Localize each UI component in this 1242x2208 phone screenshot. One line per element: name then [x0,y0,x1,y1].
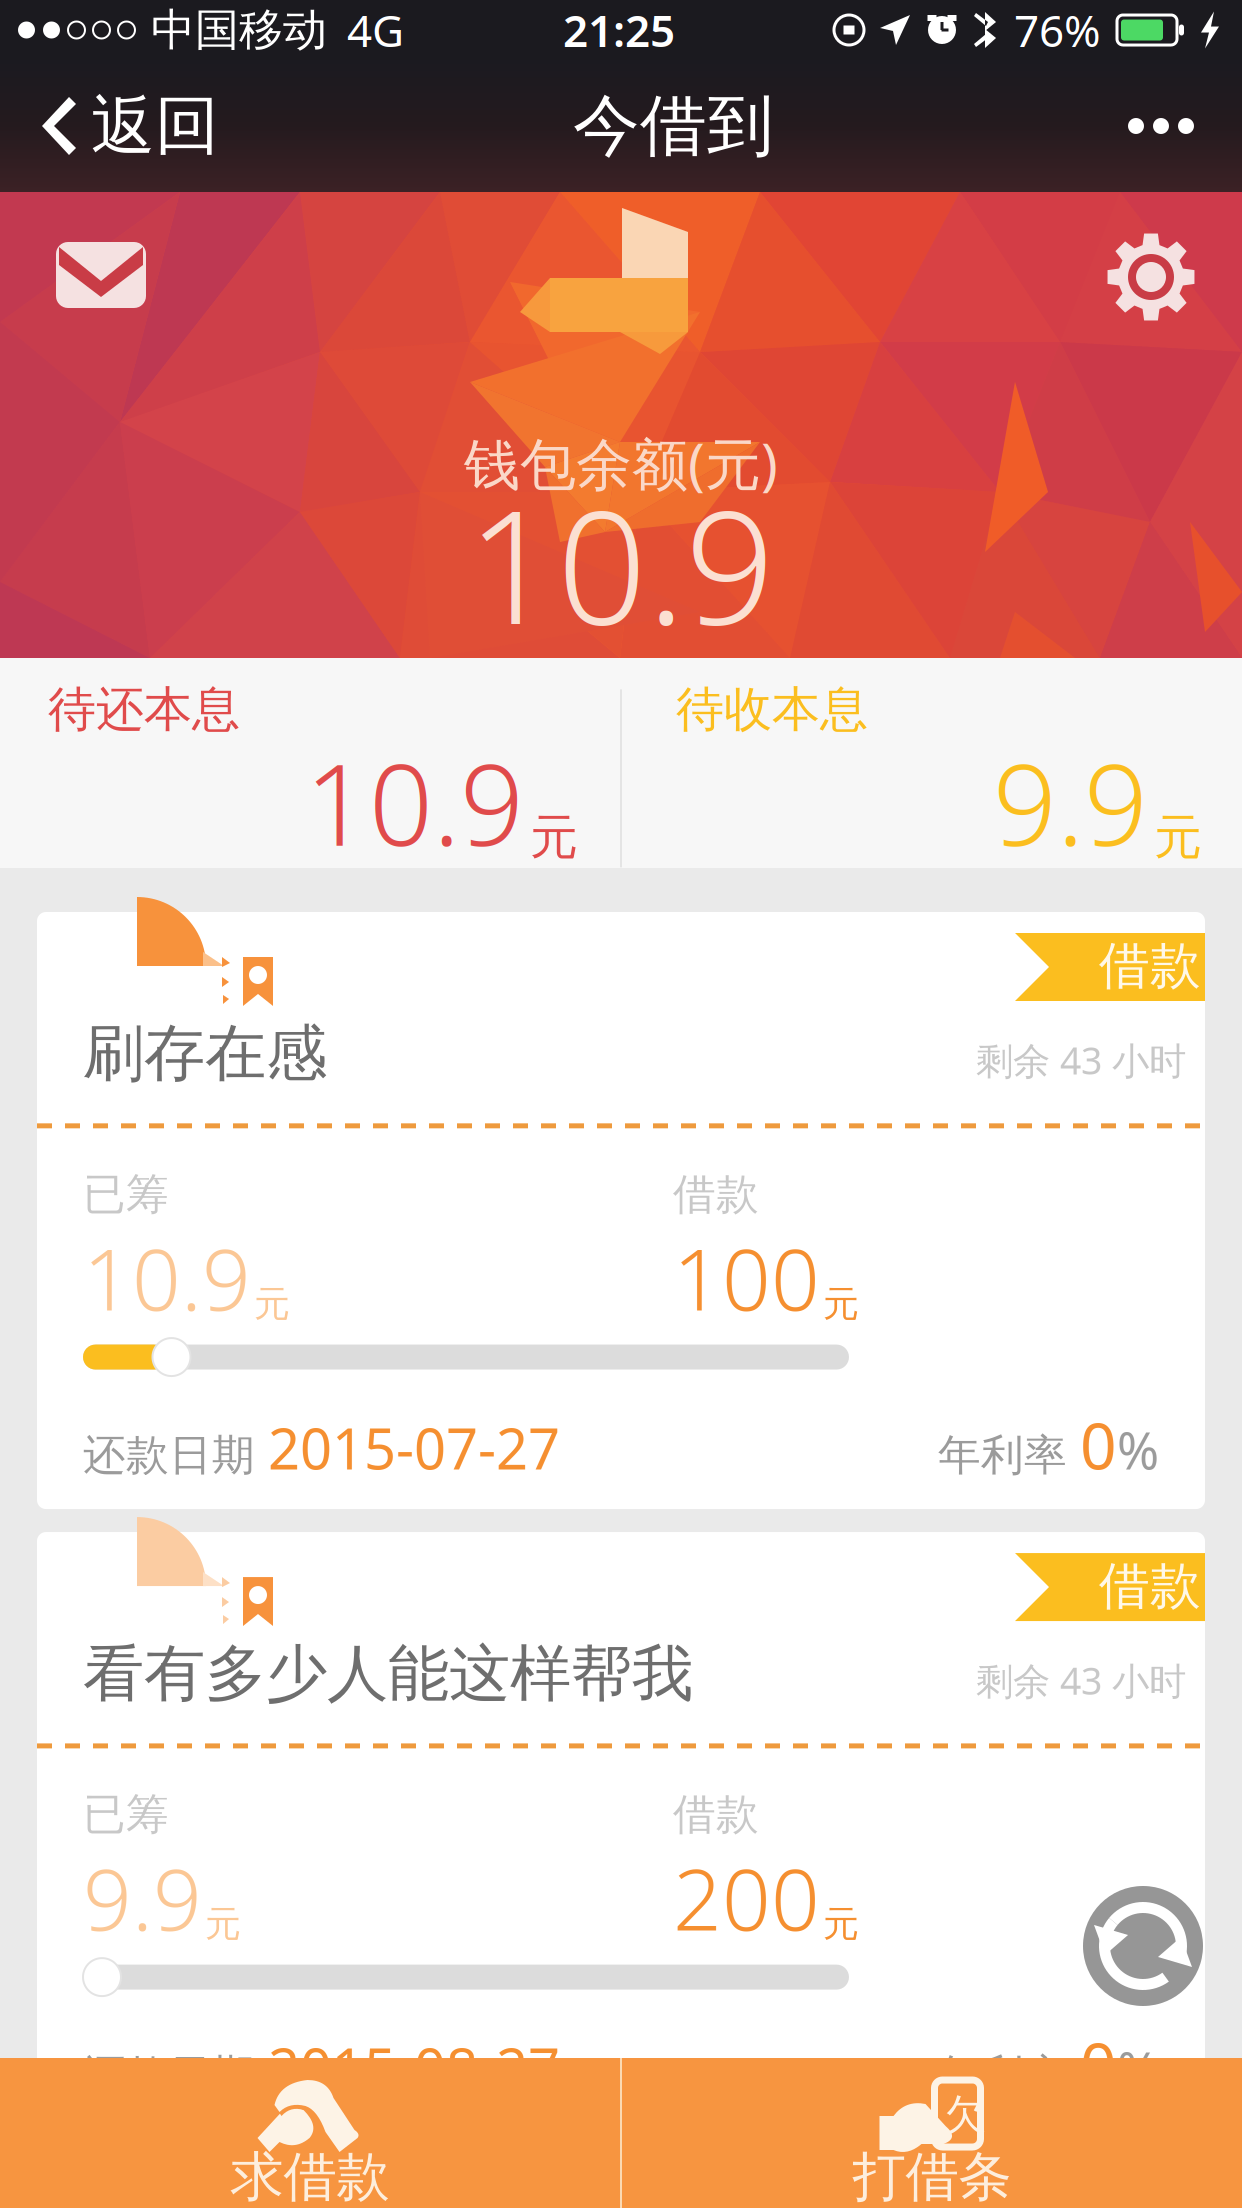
staticText: 看有多少人能这样帮我 [83,1636,693,1711]
staticText: 剩余 43 小时 [976,1035,1186,1085]
staticText: 打借条 [852,2144,1011,2208]
staticText: 欠 [943,2089,986,2141]
staticText: 100 [673,1221,820,1334]
button[interactable]: 返回 [0,73,219,179]
staticText: 76% [1014,1,1101,59]
staticText: 借款 [673,1168,759,1221]
staticText: 剩余 43 小时 [976,1655,1186,1705]
staticText: 年利率 [938,2049,1080,2101]
staticText: 元 [530,808,578,867]
staticText: 借款 [1099,1555,1201,1617]
staticText: 9.9 [83,1841,202,1954]
staticText: 刷存在感 [83,1016,327,1091]
staticText: 钱包余额(元) [464,426,778,500]
button[interactable]: 借款 [37,1532,1205,2129]
staticText: 0 [1080,1402,1117,1487]
staticText: 待还本息 [48,680,240,739]
staticText: % [1117,1416,1159,1483]
staticText: 已筹 [83,1788,169,1841]
staticText: 200 [673,1841,820,1954]
staticText: 借款 [673,1788,759,1841]
staticText: 中国移动 [151,3,327,57]
staticText: 10.9 [467,458,775,667]
staticText: 10.9 [83,1221,251,1334]
button[interactable]: Messages [0,192,146,308]
staticText: 返回 [91,87,219,165]
staticText: 9.9 [993,728,1148,877]
staticText: 2015-07-27 [268,1410,560,1485]
button[interactable]: Refresh [1083,1886,1203,2006]
staticText: 求借款 [230,2144,389,2208]
staticText: 元 [823,1902,859,1946]
staticText: % [1117,2036,1159,2103]
staticText: 21:25 [563,1,675,59]
staticText: 借款 [1099,935,1201,997]
staticText: 4G [347,1,404,59]
button[interactable]: 欠 [622,2058,1242,2208]
staticText: 还款日期 [83,2049,268,2101]
staticText: 今借到 [573,85,774,167]
staticText: 0 [1080,2022,1117,2107]
staticText: 10.9 [305,728,524,877]
staticText: 元 [1154,808,1202,867]
staticText: 元 [254,1282,290,1326]
button[interactable]: Settings [1106,192,1242,322]
staticText: 2015-08-27 [268,2030,560,2105]
button[interactable]: More [1128,88,1242,164]
staticText: 元 [205,1902,241,1946]
staticText: 元 [823,1282,859,1326]
staticText: 待收本息 [676,680,868,739]
staticText: 已筹 [83,1168,169,1221]
button[interactable]: 借款 [37,912,1205,1509]
button[interactable]: 求借款 [0,2058,620,2208]
staticText: 年利率 [938,1429,1080,1481]
staticText: 还款日期 [83,1429,268,1481]
